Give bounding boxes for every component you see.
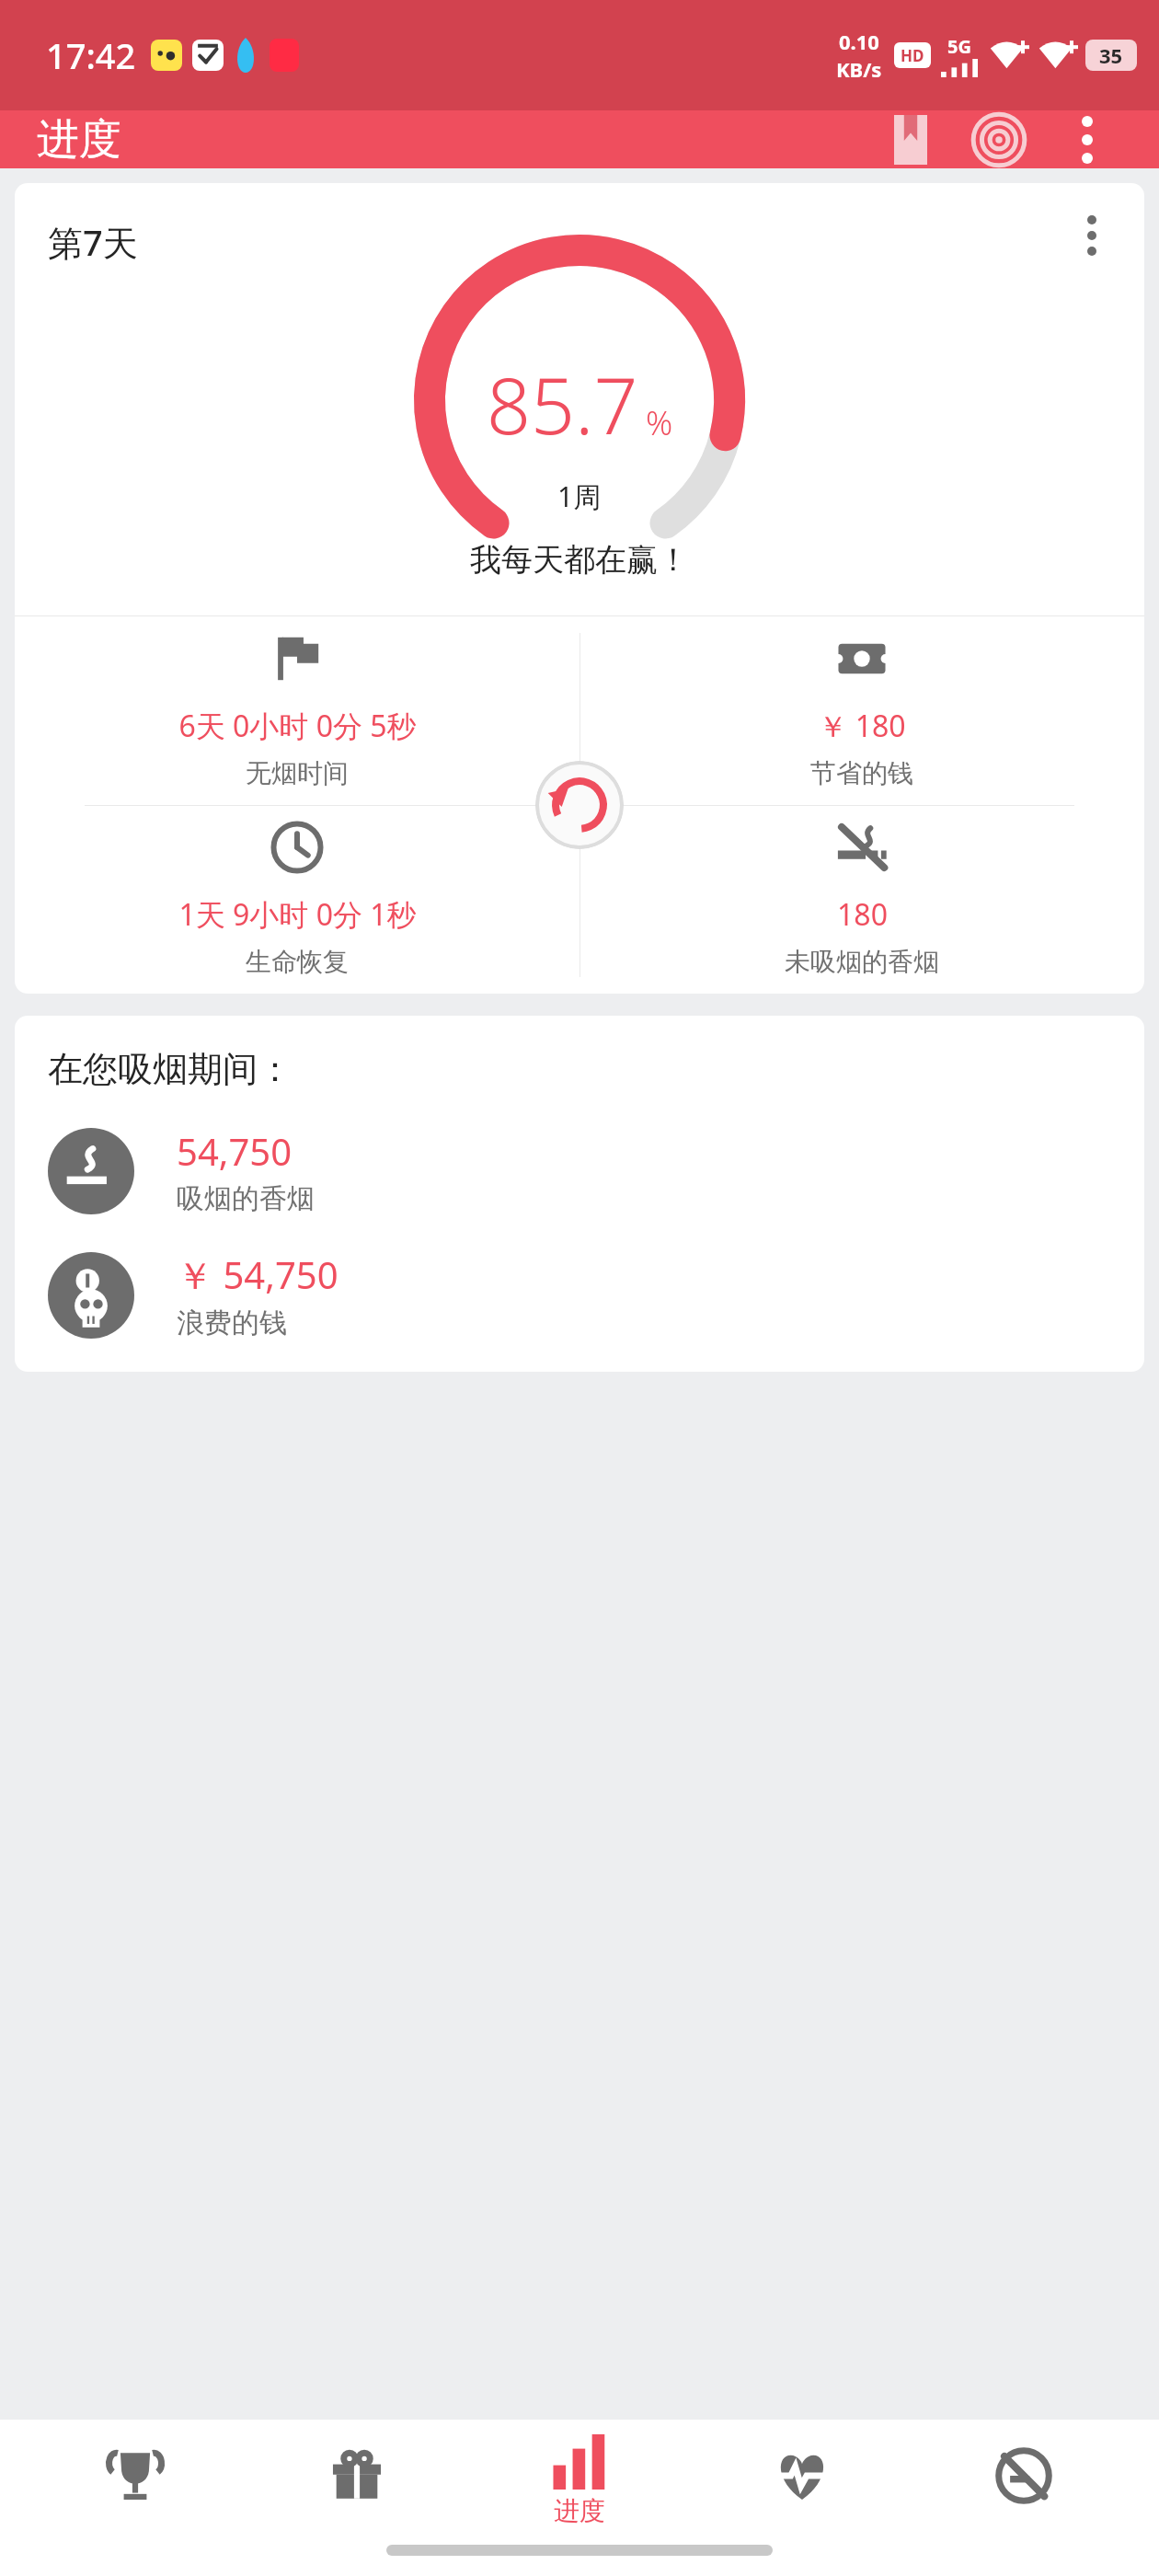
button[interactable]: Reset <box>535 761 624 849</box>
staticText: 进度 <box>37 113 121 167</box>
button[interactable]: Target <box>955 110 1043 168</box>
button[interactable]: Bookmark <box>866 110 955 168</box>
staticText: 180 <box>837 894 888 935</box>
staticText: 我每天都在赢！ <box>470 540 689 580</box>
button[interactable]: Gifts <box>270 2434 444 2545</box>
staticText: 吸烟的香烟 <box>177 1181 315 1216</box>
button[interactable]: More options <box>1043 110 1131 168</box>
staticText: 17:42 <box>46 31 136 79</box>
staticText: 进度 <box>554 2495 605 2527</box>
staticText: 浪费的钱 <box>177 1305 287 1340</box>
staticText: 在您吸烟期间： <box>48 1047 293 1091</box>
button[interactable]: 54,750 <box>48 1126 1117 1216</box>
staticText: ￥ 54,750 <box>177 1249 339 1300</box>
staticText: 0.10 <box>839 28 879 55</box>
button[interactable]: 进度 <box>492 2434 667 2545</box>
staticText: 生命恢复 <box>246 946 349 978</box>
staticText: 未吸烟的香烟 <box>785 946 939 978</box>
button[interactable]: Health <box>715 2434 889 2545</box>
button[interactable]: Trophy <box>48 2434 223 2545</box>
button[interactable]: Card menu <box>1060 203 1124 268</box>
button[interactable]: 1天 9小时 0分 1秒 <box>15 805 579 994</box>
staticText: HD <box>901 45 924 66</box>
staticText: KB/s <box>836 55 882 83</box>
button[interactable]: 6天 0小时 0分 5秒 <box>15 616 579 805</box>
staticText: 无烟时间 <box>246 757 349 789</box>
staticText: 85.7 <box>487 351 638 456</box>
staticText: ￥ 180 <box>818 706 906 746</box>
staticText: 5G <box>947 34 971 59</box>
button[interactable]: 180 <box>579 805 1144 994</box>
staticText: 节省的钱 <box>810 757 913 789</box>
staticText: 1天 9小时 0分 1秒 <box>178 894 417 935</box>
button[interactable]: ￥ 54,750 <box>48 1249 1117 1340</box>
staticText: 1周 <box>557 477 602 515</box>
staticText: 35 <box>1099 41 1123 69</box>
staticText: 6天 0小时 0分 5秒 <box>178 706 417 746</box>
button[interactable]: Smoke free <box>936 2434 1111 2545</box>
staticText: % <box>646 400 673 445</box>
button[interactable]: ￥ 180 <box>579 616 1144 805</box>
staticText: 54,750 <box>177 1126 293 1176</box>
staticText: 第7天 <box>48 218 138 266</box>
